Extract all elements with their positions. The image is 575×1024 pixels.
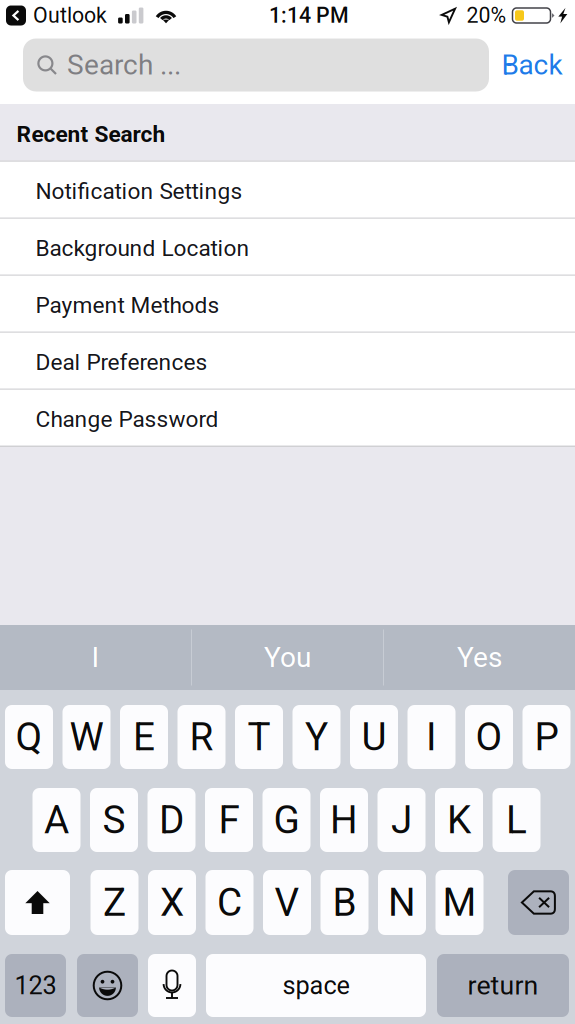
button[interactable]: N — [378, 870, 426, 935]
button[interactable]: Z — [90, 870, 138, 935]
button[interactable]: S — [90, 788, 138, 852]
button[interactable]: H — [320, 788, 368, 852]
button[interactable]: M — [435, 870, 483, 935]
staticText: U — [361, 714, 386, 760]
staticText: Background Location — [35, 235, 249, 261]
staticText: L — [506, 797, 527, 843]
button[interactable]: Notification Settings — [0, 162, 575, 219]
staticText: S — [102, 797, 125, 843]
button[interactable]: I — [407, 705, 455, 769]
staticText: Notification Settings — [35, 178, 242, 204]
button[interactable]: Yes — [384, 625, 575, 690]
button[interactable]: I — [0, 625, 191, 690]
staticText: Q — [15, 714, 42, 760]
button[interactable]: D — [147, 788, 195, 852]
button[interactable]: Q — [5, 705, 53, 769]
button[interactable]: G — [262, 788, 310, 852]
staticText: N — [388, 880, 416, 925]
button[interactable]: space — [206, 954, 426, 1017]
button[interactable]: Background Location — [0, 219, 575, 276]
staticText: W — [69, 714, 103, 760]
staticText: H — [330, 797, 358, 843]
button[interactable]: P — [522, 705, 570, 769]
button[interactable]: O — [465, 705, 513, 769]
staticText: I — [91, 641, 99, 674]
staticText: Deal Preferences — [35, 349, 207, 375]
button[interactable]: T — [235, 705, 283, 769]
button[interactable]: return — [437, 954, 569, 1017]
staticText: Yes — [457, 641, 502, 674]
button[interactable]: E — [120, 705, 168, 769]
button[interactable]: W — [62, 705, 110, 769]
staticText: You — [264, 641, 311, 674]
button[interactable]: Y — [292, 705, 340, 769]
staticText: space — [282, 971, 349, 1000]
staticText: I — [426, 714, 437, 760]
button[interactable]: L — [492, 788, 540, 852]
button[interactable]: C — [205, 870, 253, 935]
staticText: Z — [103, 880, 126, 925]
staticText: P — [534, 714, 558, 760]
staticText: J — [391, 797, 412, 843]
staticText: G — [273, 797, 299, 843]
button[interactable]: B — [320, 870, 368, 935]
button[interactable]: R — [177, 705, 225, 769]
staticText: 20% — [466, 3, 506, 28]
staticText: return — [467, 970, 538, 1001]
button[interactable]: V — [263, 870, 311, 935]
button[interactable]: Shift — [5, 870, 70, 935]
button[interactable]: Payment Methods — [0, 276, 575, 333]
staticText: M — [442, 880, 476, 925]
staticText: F — [218, 797, 239, 843]
staticText: Recent Search — [16, 121, 165, 148]
button[interactable]: Dictate — [148, 954, 196, 1017]
button[interactable]: X — [148, 870, 196, 935]
button[interactable]: Delete — [508, 870, 569, 935]
staticText: X — [160, 880, 184, 925]
staticText: R — [189, 714, 213, 760]
staticText: Search ... — [67, 49, 181, 81]
staticText: 1:14 PM — [269, 3, 349, 28]
staticText: Back — [501, 49, 562, 81]
button[interactable]: Deal Preferences — [0, 333, 575, 390]
staticText: C — [217, 880, 242, 925]
staticText: Change Password — [35, 406, 218, 432]
staticText: K — [447, 797, 471, 843]
button[interactable]: A — [32, 788, 80, 852]
button[interactable]: Emoji — [77, 954, 138, 1017]
staticText: Y — [305, 714, 328, 760]
button[interactable]: Change Password — [0, 390, 575, 447]
button[interactable]: F — [205, 788, 253, 852]
staticText: V — [274, 880, 299, 925]
staticText: O — [475, 714, 502, 760]
staticText: D — [159, 797, 184, 843]
staticText: T — [247, 714, 270, 760]
staticText: Outlook — [33, 3, 107, 28]
button[interactable]: Back to Outlook — [0, 3, 107, 28]
staticText: 123 — [14, 971, 56, 1000]
staticText: E — [133, 714, 155, 760]
staticText: Payment Methods — [35, 292, 219, 318]
button[interactable]: Back — [489, 38, 575, 91]
button[interactable]: You — [192, 625, 383, 690]
button[interactable]: J — [377, 788, 425, 852]
button[interactable]: 123 — [5, 954, 66, 1017]
button[interactable]: K — [435, 788, 483, 852]
staticText: A — [44, 797, 69, 843]
staticText: B — [332, 880, 356, 925]
button[interactable]: U — [350, 705, 398, 769]
